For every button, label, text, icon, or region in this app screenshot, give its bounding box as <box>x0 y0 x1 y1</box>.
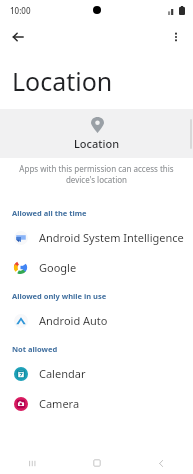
staticText: Location <box>74 136 120 151</box>
button[interactable]: Google <box>0 252 193 282</box>
staticText: Google <box>39 260 77 275</box>
staticText: Location <box>12 64 113 98</box>
button[interactable]: Android Auto <box>0 305 193 335</box>
staticText: Android System Intelligence <box>39 230 184 245</box>
button[interactable]: Recent apps <box>0 452 65 474</box>
button[interactable]: Calendar <box>0 358 193 388</box>
staticText: Apps with this permission can access thi… <box>14 163 179 185</box>
button[interactable]: Android System Intelligence <box>0 222 193 252</box>
button[interactable]: Back <box>129 452 193 474</box>
button[interactable]: Camera <box>0 388 193 418</box>
button[interactable]: Back <box>5 24 31 50</box>
staticText: Not allowed <box>12 344 58 354</box>
staticText: 10:00 <box>10 5 31 16</box>
staticText: Allowed only while in use <box>12 291 107 301</box>
button[interactable]: More options <box>163 24 189 50</box>
staticText: Camera <box>39 396 80 411</box>
staticText: Allowed all the time <box>12 208 87 218</box>
staticText: Android Auto <box>39 313 108 328</box>
button[interactable]: Home <box>65 452 129 474</box>
staticText: Calendar <box>39 366 86 381</box>
